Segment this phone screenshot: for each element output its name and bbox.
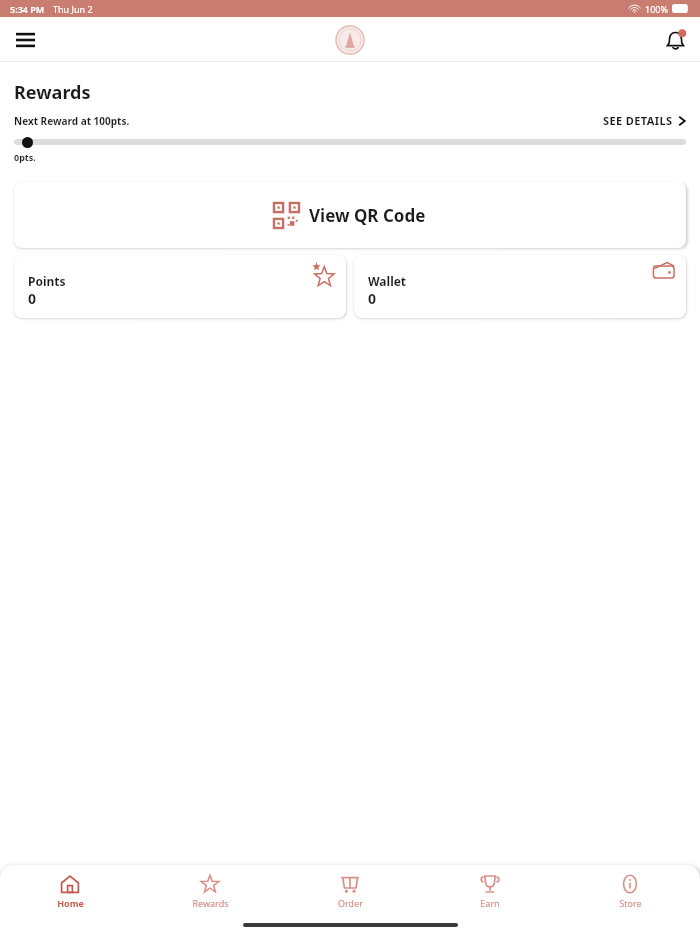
staticText: 0 [28,289,37,308]
button[interactable]: Menu [8,23,42,57]
staticText: Next Reward at 100pts. [14,114,130,128]
button[interactable]: Points [14,255,346,318]
button[interactable]: Rewards [140,865,280,917]
staticText: Rewards [192,897,229,909]
staticText: Thu Jun 2 [53,3,93,15]
staticText: Wallet [368,273,407,289]
staticText: Points [28,273,66,289]
button[interactable]: Home [0,865,140,917]
button[interactable]: Store [560,865,700,917]
button[interactable]: View QR Code [14,182,686,248]
staticText: Rewards [14,80,91,105]
button[interactable]: Order [280,865,420,917]
staticText: 0 [368,289,377,308]
staticText: Home [57,897,84,909]
button[interactable]: Notifications [658,23,692,57]
staticText: 5:34 PM [10,3,45,15]
staticText: 0pts. [14,151,36,163]
staticText: Store [619,897,642,909]
button[interactable]: Earn [420,865,560,917]
staticText: 100% [645,3,668,15]
staticText: SEE DETAILS [603,113,673,128]
staticText: Order [338,897,363,909]
button[interactable]: SEE DETAILS [603,111,686,130]
staticText: Earn [480,897,500,909]
button[interactable]: Wallet [354,255,686,318]
staticText: View QR Code [309,204,426,227]
